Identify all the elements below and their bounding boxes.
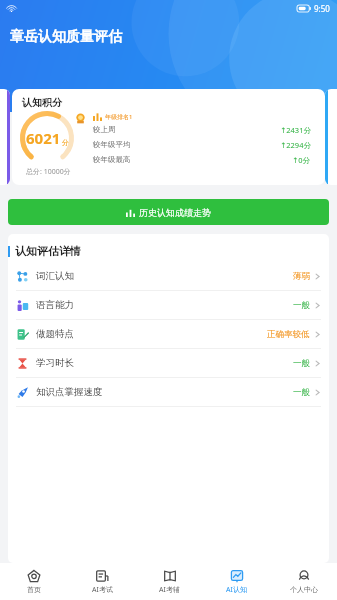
- button[interactable]: [325, 89, 337, 185]
- staticText: 一般: [293, 358, 310, 369]
- button[interactable]: AI认知: [203, 566, 270, 598]
- button[interactable]: 认知积分: [12, 89, 325, 185]
- button[interactable]: 做题特点: [8, 320, 329, 348]
- staticText: AI考试: [92, 585, 113, 595]
- staticText: ↑0分: [292, 155, 311, 165]
- staticText: 6021: [26, 128, 61, 148]
- staticText: 词汇认知: [36, 270, 74, 282]
- staticText: 章岳认知质量评估: [10, 28, 122, 46]
- staticText: 语言能力: [36, 299, 74, 311]
- staticText: 认知积分: [22, 96, 62, 109]
- staticText: 较上周: [93, 125, 116, 134]
- staticText: 一般: [293, 300, 310, 311]
- staticText: 总分: 10000分: [26, 167, 71, 177]
- button[interactable]: AI考辅: [136, 566, 203, 598]
- button[interactable]: 词汇认知: [8, 262, 329, 290]
- staticText: 个人中心: [290, 585, 318, 594]
- staticText: 9:50: [314, 3, 330, 14]
- button[interactable]: 个人中心: [270, 566, 337, 597]
- button[interactable]: 知识点掌握速度: [8, 378, 329, 406]
- button[interactable]: 学习时长: [8, 349, 329, 377]
- staticText: ↑2294分: [280, 140, 311, 150]
- button[interactable]: AI考试: [68, 566, 136, 598]
- staticText: 一般: [293, 387, 310, 398]
- staticText: 薄弱: [293, 271, 310, 282]
- staticText: 较年级平均: [93, 140, 131, 149]
- staticText: AI认知: [226, 585, 247, 595]
- staticText: 认知评估详情: [15, 244, 81, 258]
- button[interactable]: 历史认知成绩走势: [8, 199, 329, 225]
- staticText: 知识点掌握速度: [36, 386, 103, 398]
- button[interactable]: 语言能力: [8, 291, 329, 319]
- staticText: 较年级最高: [93, 155, 131, 164]
- staticText: 做题特点: [36, 328, 74, 340]
- staticText: 首页: [27, 585, 41, 594]
- staticText: 历史认知成绩走势: [139, 207, 211, 218]
- staticText: 年级排名1: [105, 113, 133, 121]
- staticText: 学习时长: [36, 357, 74, 369]
- staticText: 分: [62, 138, 69, 147]
- staticText: ↑2431分: [280, 125, 311, 135]
- staticText: AI考辅: [159, 585, 180, 595]
- button[interactable]: 首页: [0, 566, 68, 597]
- staticText: 正确率较低: [267, 329, 310, 340]
- button[interactable]: [0, 89, 10, 185]
